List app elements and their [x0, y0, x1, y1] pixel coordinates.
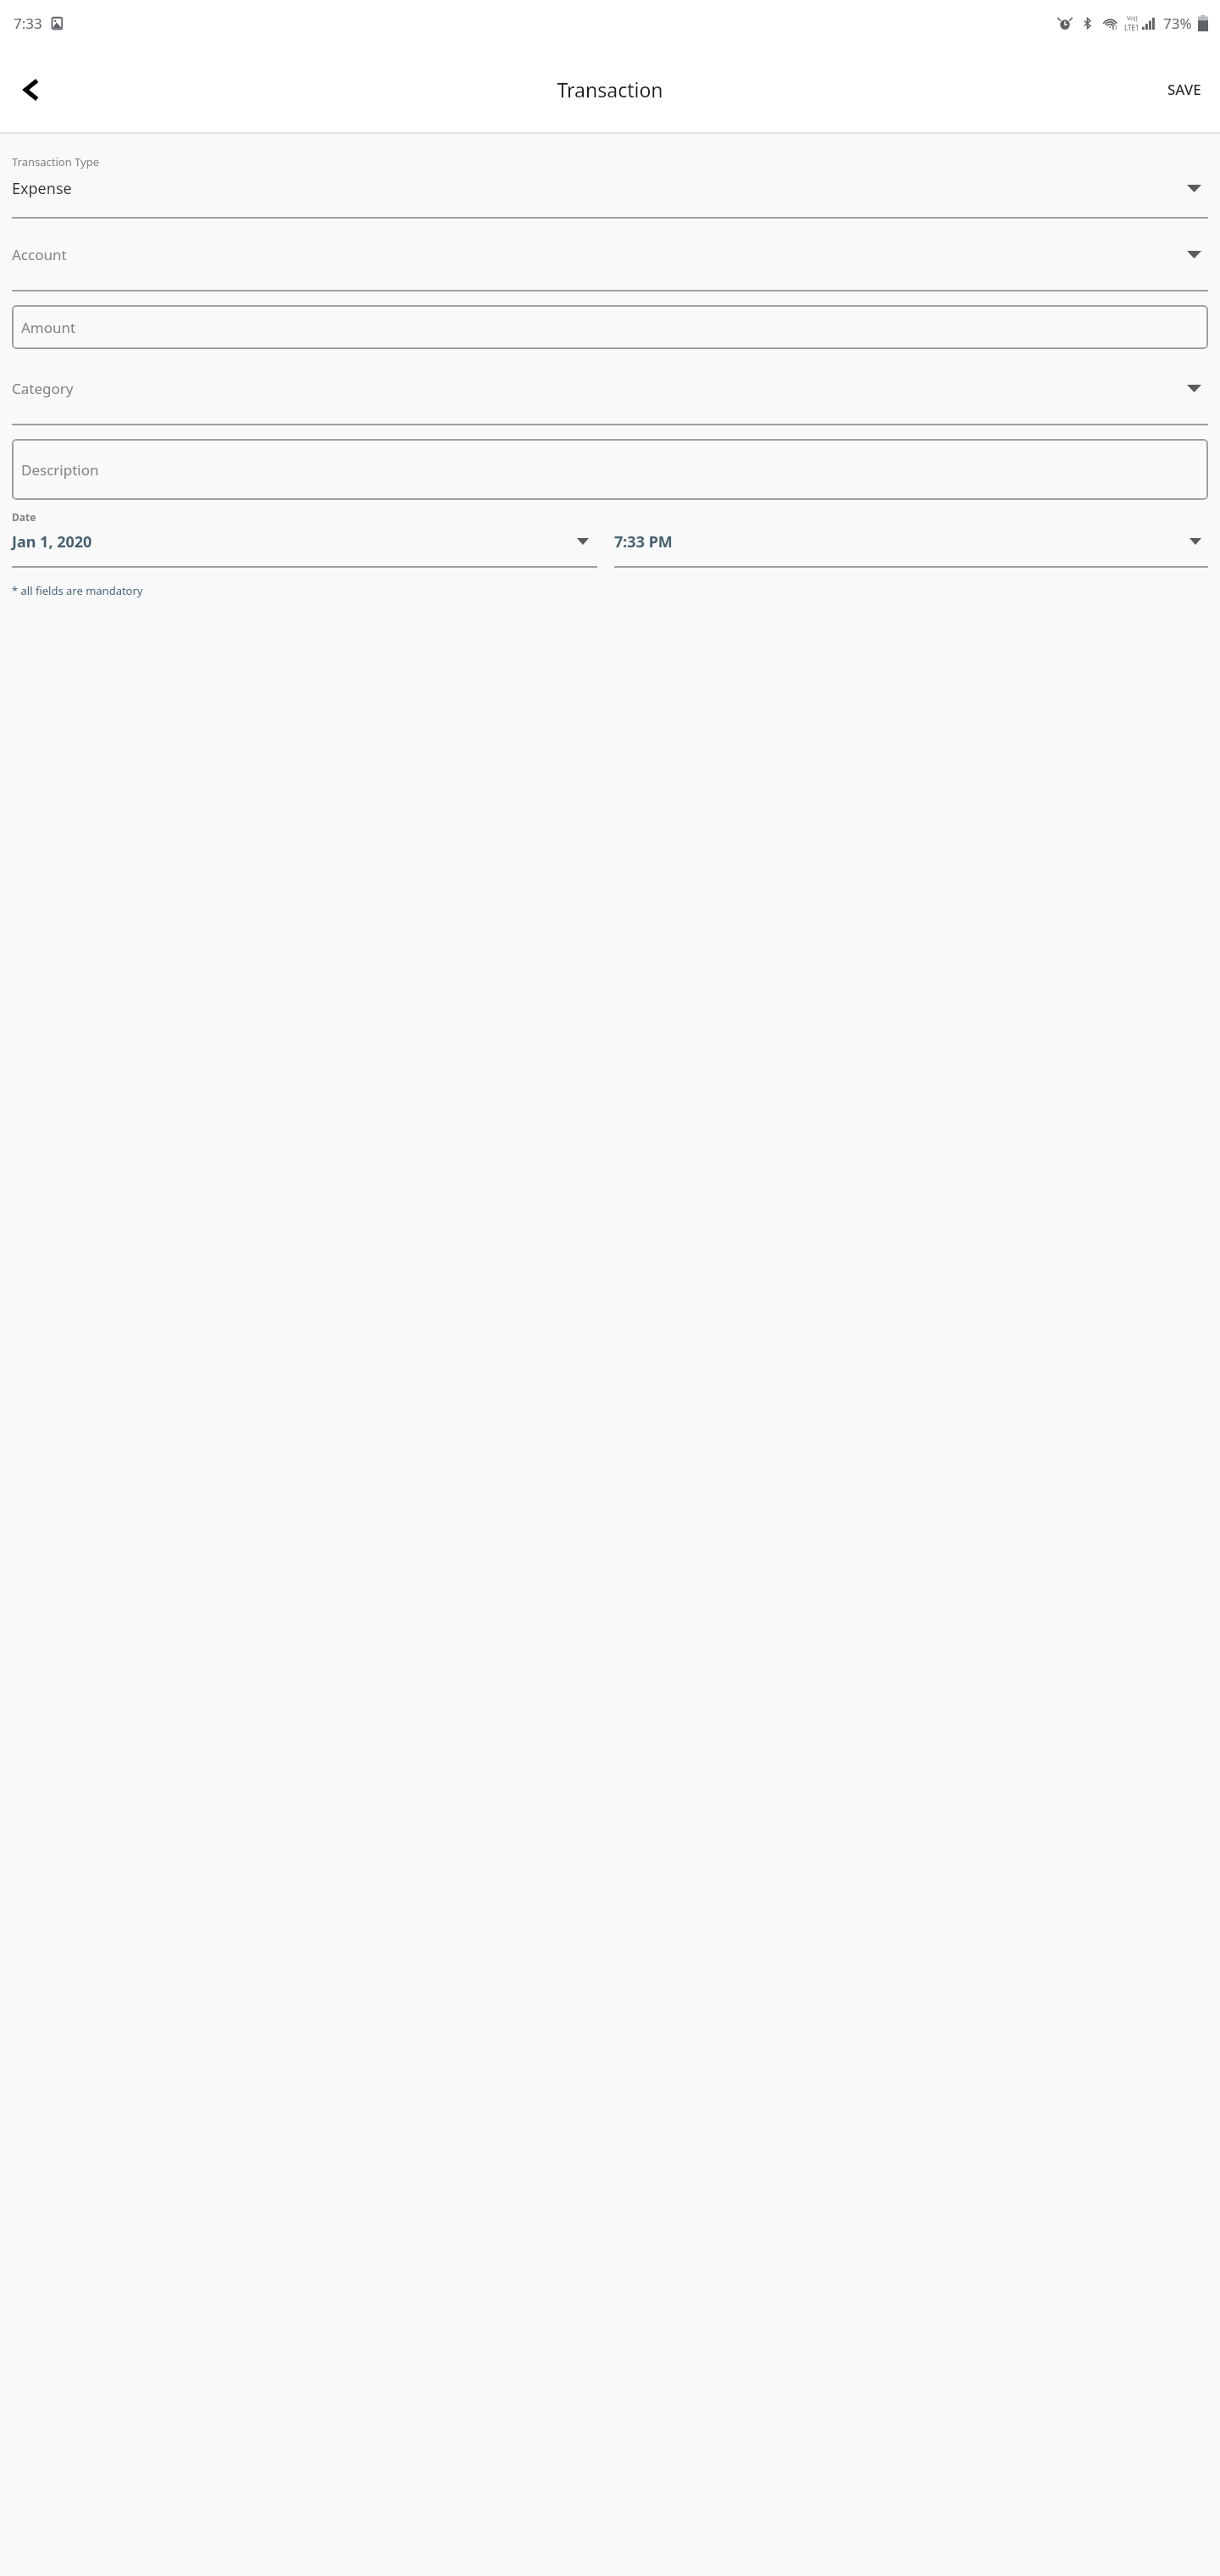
button[interactable]: Category [0, 372, 1220, 425]
staticText: Expense [12, 178, 72, 199]
staticText: Description [21, 460, 99, 480]
staticText: Account [12, 245, 67, 264]
button[interactable]: Description [12, 439, 1208, 500]
button[interactable]: Amount [12, 305, 1208, 349]
staticText: * all fields are mandatory [12, 583, 143, 598]
staticText: Transaction [557, 76, 663, 103]
button[interactable]: SAVE [1149, 68, 1220, 111]
button[interactable]: Jan 1, 2020 [12, 530, 606, 568]
staticText: Date [12, 510, 36, 524]
button[interactable]: Back [12, 69, 53, 110]
staticText: Jan 1, 2020 [12, 531, 92, 552]
staticText: 7:33 [14, 14, 42, 33]
staticText: LTE1 [1124, 23, 1140, 32]
staticText: Vo)) [1127, 14, 1138, 23]
staticText: Transaction Type [12, 154, 100, 169]
staticText: SAVE [1167, 80, 1201, 99]
staticText: Category [12, 379, 74, 398]
button[interactable]: Account [0, 238, 1220, 291]
button[interactable]: Transaction Type [0, 154, 1220, 219]
staticText: 73% [1163, 14, 1192, 33]
staticText: 7:33 PM [614, 531, 673, 552]
staticText: Amount [21, 318, 76, 337]
button[interactable]: 7:33 PM [614, 530, 1208, 568]
